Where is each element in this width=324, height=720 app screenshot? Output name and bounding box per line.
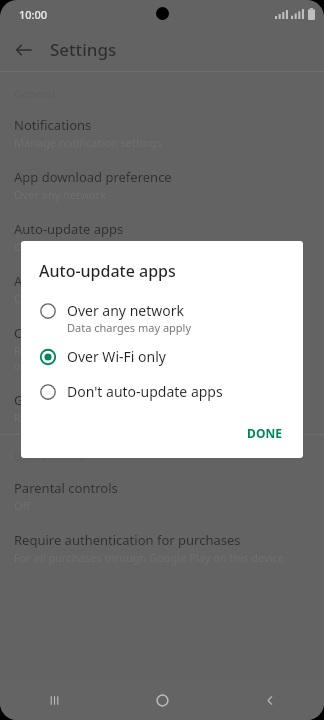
button[interactable]: Home (108, 680, 216, 720)
staticText: Auto-update apps (39, 260, 176, 282)
staticText: Notifications (14, 116, 92, 134)
staticText: Over Wi-Fi only (67, 347, 166, 366)
button[interactable]: Clear local search history (0, 315, 324, 382)
button[interactable]: Don't auto-update apps (21, 376, 303, 407)
staticText: Google Play Instant (14, 391, 134, 409)
button[interactable]: DONE (234, 416, 295, 450)
staticText: Over any network (67, 301, 184, 320)
staticText: Don't auto-update apps (67, 382, 223, 401)
staticText: Settings (50, 38, 117, 61)
button[interactable]: Require authentication for purchases (0, 522, 324, 574)
staticText: Over any network (14, 187, 106, 202)
staticText: Parental controls (14, 479, 118, 497)
staticText: 10:00 (19, 7, 48, 22)
staticText: Off (14, 498, 31, 513)
staticText: Remove history in your wishlist, the Bet… (14, 343, 295, 373)
staticText: Over Wi-Fi only (14, 239, 92, 254)
button[interactable]: Parental controls (0, 470, 324, 522)
button[interactable]: Over Wi-Fi only (21, 341, 303, 372)
button[interactable]: Auto-update apps (0, 211, 324, 263)
staticText: Clear local search history (14, 324, 167, 342)
button[interactable]: Over any network (21, 295, 303, 341)
button[interactable]: Google Play Instant (0, 382, 324, 434)
staticText: Over Wi-Fi only (14, 291, 92, 306)
staticText: Require authentication for purchases (14, 531, 241, 549)
staticText: DONE (247, 425, 282, 441)
button[interactable]: App download preference (0, 159, 324, 211)
staticText: Auto-play videos (14, 272, 116, 290)
staticText: Remove local search history (14, 410, 158, 425)
staticText: User controls (14, 449, 84, 464)
staticText: For all purchases through Google Play on… (14, 550, 285, 565)
staticText: Manage notification settings (14, 135, 162, 150)
button[interactable]: Back (10, 36, 38, 64)
button[interactable]: Notifications (0, 107, 324, 159)
staticText: Data charges may apply (67, 320, 192, 335)
button[interactable]: Auto-play videos (0, 263, 324, 315)
staticText: Auto-update apps (14, 220, 124, 238)
button[interactable]: Recent apps (0, 680, 108, 720)
staticText: App download preference (14, 168, 172, 186)
button[interactable]: Back (216, 680, 324, 720)
